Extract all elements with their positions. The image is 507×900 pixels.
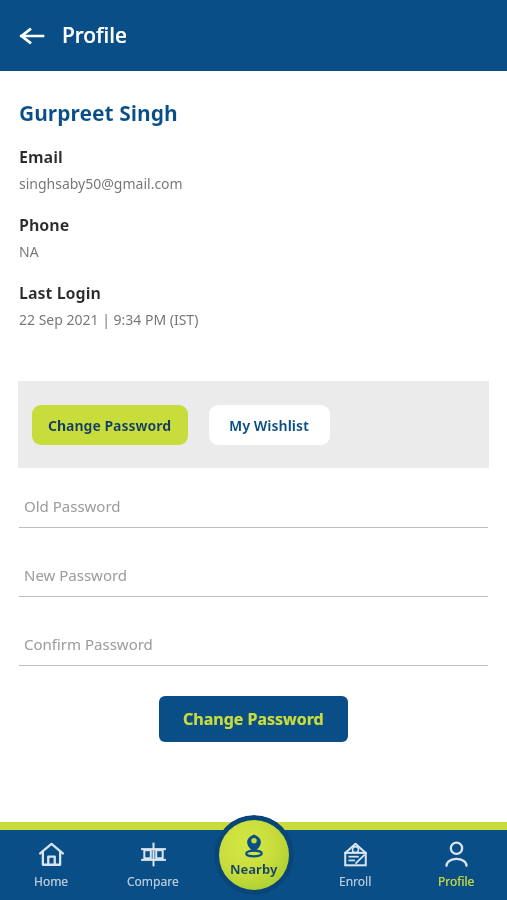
button[interactable]: Change Password	[32, 405, 188, 445]
staticText: Old Password	[24, 496, 121, 516]
staticText: Enroll	[339, 873, 372, 889]
button[interactable]: Profile	[406, 822, 507, 900]
staticText: 22 Sep 2021 | 9:34 PM (IST)	[19, 310, 199, 329]
staticText: singhsaby50@gmail.com	[19, 174, 183, 193]
button[interactable]: Enroll	[305, 822, 406, 900]
button[interactable]: New Password	[19, 554, 488, 597]
staticText: Confirm Password	[24, 634, 153, 654]
staticText: Home	[34, 873, 69, 889]
staticText: Email	[19, 146, 63, 168]
staticText: My Wishlist	[229, 416, 310, 435]
staticText: Nearby	[230, 860, 278, 878]
staticText: Change Password	[183, 708, 324, 730]
button[interactable]: My Wishlist	[209, 405, 330, 445]
staticText: Change Password	[48, 416, 172, 435]
button[interactable]: Back	[10, 14, 54, 58]
button[interactable]: Change Password	[159, 696, 348, 742]
staticText: New Password	[24, 565, 128, 585]
staticText: Compare	[127, 873, 179, 889]
button[interactable]: Nearby	[214, 815, 294, 895]
staticText: Last Login	[19, 282, 101, 304]
button[interactable]: Old Password	[19, 485, 488, 528]
staticText: Profile	[438, 873, 475, 889]
staticText: Profile	[62, 21, 127, 50]
staticText: Gurpreet Singh	[19, 99, 178, 128]
staticText: NA	[19, 242, 39, 261]
button[interactable]: Confirm Password	[19, 623, 488, 666]
button[interactable]: Home	[0, 822, 102, 900]
button[interactable]: Compare	[102, 822, 204, 900]
staticText: Phone	[19, 214, 70, 236]
